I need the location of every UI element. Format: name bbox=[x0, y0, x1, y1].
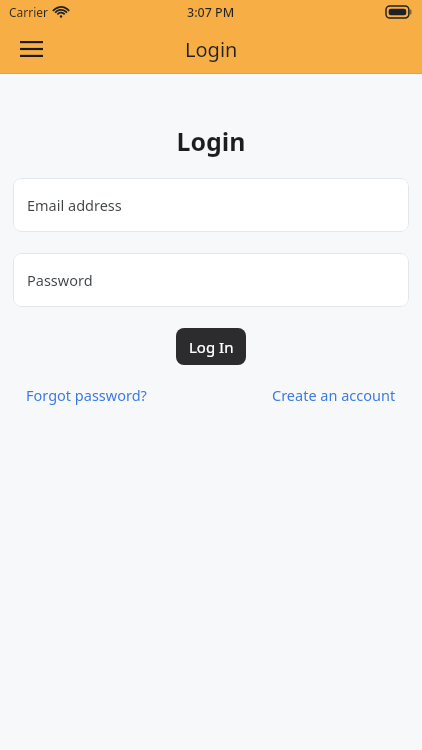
staticText: Log In bbox=[189, 337, 234, 357]
button[interactable]: Log In bbox=[176, 328, 246, 365]
button[interactable]: Forgot password? bbox=[26, 385, 147, 405]
staticText: 3:07 PM bbox=[187, 4, 235, 21]
staticText: Login bbox=[185, 36, 238, 63]
button[interactable]: Email address bbox=[13, 178, 409, 232]
staticText: Create an account bbox=[272, 385, 396, 405]
staticText: Forgot password? bbox=[26, 385, 147, 405]
button[interactable]: Create an account bbox=[272, 385, 396, 405]
staticText: Login bbox=[0, 124, 422, 158]
button[interactable]: Open navigation menu bbox=[10, 28, 52, 70]
staticText: Password bbox=[27, 270, 93, 290]
staticText: Carrier bbox=[9, 4, 49, 20]
staticText: Email address bbox=[27, 195, 122, 215]
button[interactable]: Password bbox=[13, 253, 409, 307]
